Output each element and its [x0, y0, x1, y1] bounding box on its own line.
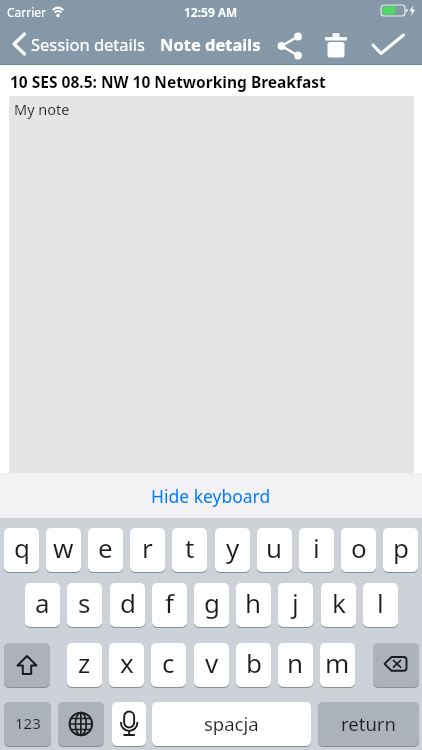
button[interactable]: o: [341, 528, 376, 572]
staticText: h: [245, 585, 262, 620]
staticText: u: [266, 530, 283, 565]
button[interactable]: [276, 31, 306, 61]
staticText: s: [78, 585, 91, 620]
staticText: l: [377, 585, 384, 620]
staticText: e: [98, 530, 113, 565]
staticText: o: [351, 530, 367, 565]
staticText: c: [162, 645, 175, 680]
button[interactable]: c: [151, 643, 186, 687]
staticText: return: [341, 711, 396, 736]
button[interactable]: w: [46, 528, 81, 572]
staticText: j: [292, 585, 299, 620]
button[interactable]: n: [278, 643, 313, 687]
button[interactable]: r: [130, 528, 165, 572]
button[interactable]: f: [152, 583, 187, 627]
button[interactable]: 123: [4, 702, 51, 746]
button[interactable]: m: [320, 643, 355, 687]
staticText: 10 SES 08.5: NW 10 Networking Breakfast: [10, 71, 326, 92]
button[interactable]: return: [318, 702, 419, 746]
staticText: d: [120, 585, 136, 620]
button[interactable]: a: [25, 583, 60, 627]
button[interactable]: u: [257, 528, 292, 572]
staticText: b: [246, 645, 262, 680]
button[interactable]: b: [236, 643, 271, 687]
staticText: z: [78, 645, 91, 680]
button[interactable]: t: [172, 528, 207, 572]
staticText: y: [226, 530, 240, 565]
button[interactable]: [373, 643, 419, 687]
staticText: 123: [15, 713, 41, 733]
staticText: r: [142, 530, 153, 565]
button[interactable]: g: [194, 583, 229, 627]
staticText: i: [313, 530, 320, 565]
button[interactable]: Session details: [10, 22, 145, 65]
staticText: a: [35, 585, 50, 620]
staticText: x: [120, 645, 134, 680]
button[interactable]: s: [67, 583, 102, 627]
button[interactable]: spacja: [152, 702, 311, 746]
staticText: My note: [14, 99, 70, 119]
button[interactable]: q: [4, 528, 39, 572]
button[interactable]: [370, 29, 406, 59]
button[interactable]: [321, 31, 351, 61]
button[interactable]: [58, 702, 104, 746]
staticText: spacja: [204, 711, 259, 736]
staticText: Session details: [31, 33, 145, 55]
staticText: w: [53, 530, 74, 565]
button[interactable]: j: [278, 583, 313, 627]
staticText: g: [204, 585, 220, 620]
button[interactable]: Hide keyboard: [0, 473, 422, 518]
button[interactable]: e: [88, 528, 123, 572]
button[interactable]: k: [321, 583, 356, 627]
button[interactable]: h: [236, 583, 271, 627]
button[interactable]: [4, 643, 50, 687]
staticText: k: [332, 585, 346, 620]
staticText: Note details: [160, 33, 261, 55]
button[interactable]: [112, 702, 146, 746]
staticText: p: [393, 530, 409, 565]
staticText: q: [14, 530, 30, 565]
button[interactable]: x: [109, 643, 144, 687]
button[interactable]: v: [194, 643, 229, 687]
staticText: t: [185, 530, 195, 565]
button[interactable]: z: [67, 643, 102, 687]
staticText: m: [325, 645, 350, 680]
staticText: n: [287, 645, 304, 680]
button[interactable]: p: [383, 528, 418, 572]
staticText: v: [205, 645, 219, 680]
staticText: 12:59 AM: [184, 4, 238, 20]
button[interactable]: y: [215, 528, 250, 572]
button[interactable]: My note: [9, 96, 414, 473]
staticText: Carrier: [7, 4, 47, 20]
staticText: f: [165, 585, 174, 620]
button[interactable]: l: [363, 583, 398, 627]
button[interactable]: i: [299, 528, 334, 572]
button[interactable]: d: [110, 583, 145, 627]
staticText: Hide keyboard: [151, 484, 271, 508]
